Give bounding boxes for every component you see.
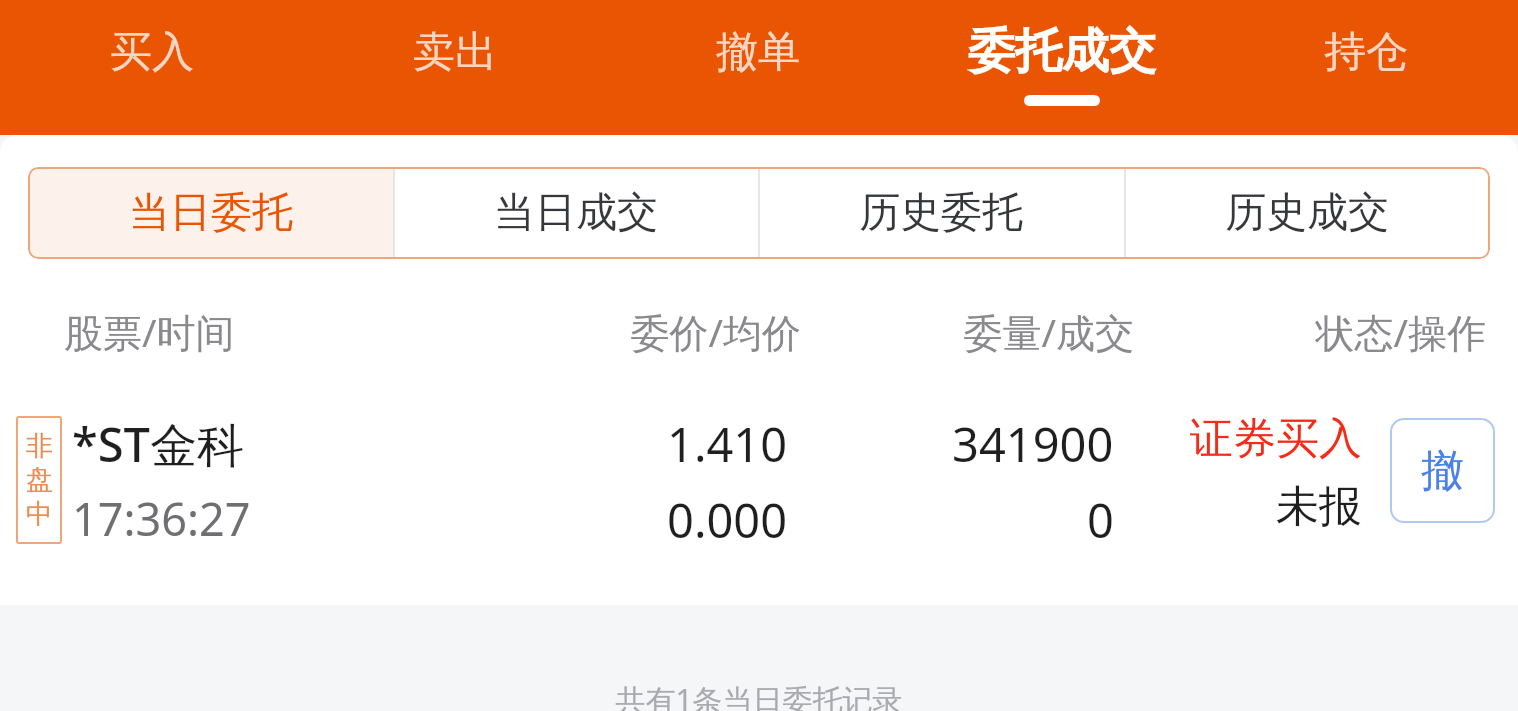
staticText: 撤 bbox=[1421, 444, 1464, 498]
staticText: 0.000 bbox=[667, 488, 788, 552]
button[interactable]: 历史委托 bbox=[758, 167, 1124, 259]
staticText: 状态/操作 bbox=[1134, 305, 1486, 358]
staticText: *ST金科 bbox=[72, 412, 245, 476]
staticText: 股票/时间 bbox=[64, 305, 449, 358]
staticText: 共有1条当日委托记录 bbox=[0, 679, 1518, 711]
staticText: 委价/均价 bbox=[449, 305, 801, 358]
staticText: 历史委托 bbox=[859, 187, 1023, 239]
staticText: 341900 bbox=[952, 412, 1114, 476]
staticText: 1.410 bbox=[667, 412, 788, 476]
staticText: 0 bbox=[1087, 488, 1114, 552]
staticText: 卖出 bbox=[413, 26, 497, 79]
staticText: 委托成交 bbox=[968, 22, 1156, 81]
staticText: 未报 bbox=[1276, 480, 1362, 534]
staticText: 委量/成交 bbox=[801, 305, 1134, 358]
staticText: 当日成交 bbox=[494, 187, 658, 239]
staticText: 17:36:27 bbox=[72, 488, 251, 549]
button[interactable]: 非 bbox=[0, 398, 1518, 566]
button[interactable]: 持仓 bbox=[1214, 0, 1518, 135]
button[interactable]: 撤单 bbox=[606, 0, 910, 135]
staticText: 盘 bbox=[26, 463, 53, 497]
button[interactable]: 当日成交 bbox=[393, 167, 758, 259]
button[interactable]: 当日委托 bbox=[28, 167, 393, 259]
staticText: 买入 bbox=[110, 26, 194, 79]
staticText: 非 bbox=[26, 429, 53, 463]
staticText: 证券买入 bbox=[1190, 412, 1362, 466]
staticText: 当日委托 bbox=[129, 187, 293, 239]
staticText: 历史成交 bbox=[1225, 187, 1389, 239]
button[interactable]: 委托成交 bbox=[910, 0, 1214, 135]
staticText: 中 bbox=[26, 497, 53, 531]
staticText: 撤单 bbox=[716, 26, 800, 79]
staticText: 持仓 bbox=[1324, 26, 1408, 79]
button[interactable]: 历史成交 bbox=[1124, 167, 1490, 259]
button[interactable]: 买入 bbox=[0, 0, 303, 135]
button[interactable]: 卖出 bbox=[303, 0, 606, 135]
button[interactable]: 撤单 bbox=[1390, 418, 1495, 523]
